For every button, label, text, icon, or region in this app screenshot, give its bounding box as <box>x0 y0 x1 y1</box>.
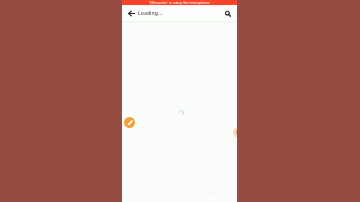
button[interactable]: Screen recorder <box>233 127 237 138</box>
button[interactable]: Microphone in use <box>122 0 237 5</box>
button[interactable]: Loading... <box>138 5 163 20</box>
staticText: 'XRecorder' is using the microphone <box>149 0 210 5</box>
button[interactable]: Back <box>125 7 137 19</box>
staticText: Loading... <box>138 9 163 16</box>
button[interactable]: Search <box>223 9 233 19</box>
button[interactable]: Compose <box>124 117 135 128</box>
